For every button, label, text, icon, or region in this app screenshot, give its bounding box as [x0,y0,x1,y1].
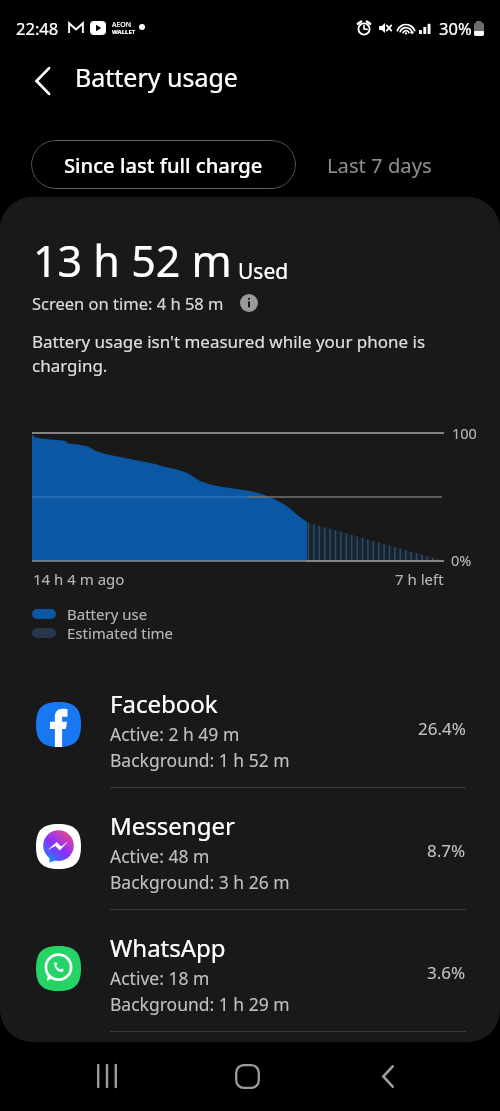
staticText: 100 [452,423,477,443]
staticText: 8.7% [427,839,466,862]
staticText: WALLET [112,28,136,36]
button[interactable]: Back [358,1046,418,1106]
staticText: 14 h 4 m ago [33,569,125,589]
staticText: 30% [439,17,472,39]
staticText: Active: 18 m [110,966,210,990]
staticText: WhatsApp [110,931,226,964]
staticText: Background: 3 h 26 m [110,870,290,894]
staticText: Screen on time: 4 h 58 m [32,292,224,314]
button[interactable]: Information [240,294,258,312]
button[interactable]: Recent apps [77,1046,137,1106]
staticText: Active: 2 h 49 m [110,722,240,746]
staticText: Estimated time [67,623,174,643]
staticText: Battery usage isn't measured while your … [32,330,437,377]
staticText: Last 7 days [327,151,432,179]
button[interactable]: WhatsApp [0,910,500,1032]
staticText: 22:48 [16,17,59,39]
staticText: Background: 1 h 29 m [110,992,290,1016]
button[interactable]: Facebook [0,666,500,788]
button[interactable]: Since last full charge [31,140,296,189]
staticText: 3.6% [427,961,466,984]
button[interactable]: Back [24,62,62,100]
button[interactable]: Last 7 days [311,140,448,189]
staticText: Since last full charge [64,151,263,179]
staticText: 7 h left [395,569,444,589]
staticText: Background: 1 h 52 m [110,748,290,772]
staticText: Used [238,257,289,286]
staticText: Messenger [110,809,235,842]
staticText: Battery use [67,604,148,624]
staticText: 0% [451,550,472,570]
staticText: Battery usage [75,60,238,94]
button[interactable]: Messenger [0,788,500,910]
button[interactable]: Home [217,1046,277,1106]
staticText: Active: 48 m [110,844,210,868]
staticText: AEON [112,20,132,30]
staticText: 26.4% [418,717,466,740]
staticText: Facebook [110,687,218,720]
staticText: 13 h 52 m [33,231,232,290]
